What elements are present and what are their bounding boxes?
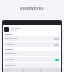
other: Avatar <box>4 27 9 32</box>
button[interactable] <box>4 36 60 41</box>
staticText: REMINDERS <box>20 6 44 11</box>
button[interactable] <box>4 51 60 56</box>
button[interactable] <box>4 63 60 68</box>
button[interactable]: Avatar <box>4 26 60 32</box>
button[interactable] <box>4 57 60 62</box>
button[interactable] <box>4 42 60 47</box>
